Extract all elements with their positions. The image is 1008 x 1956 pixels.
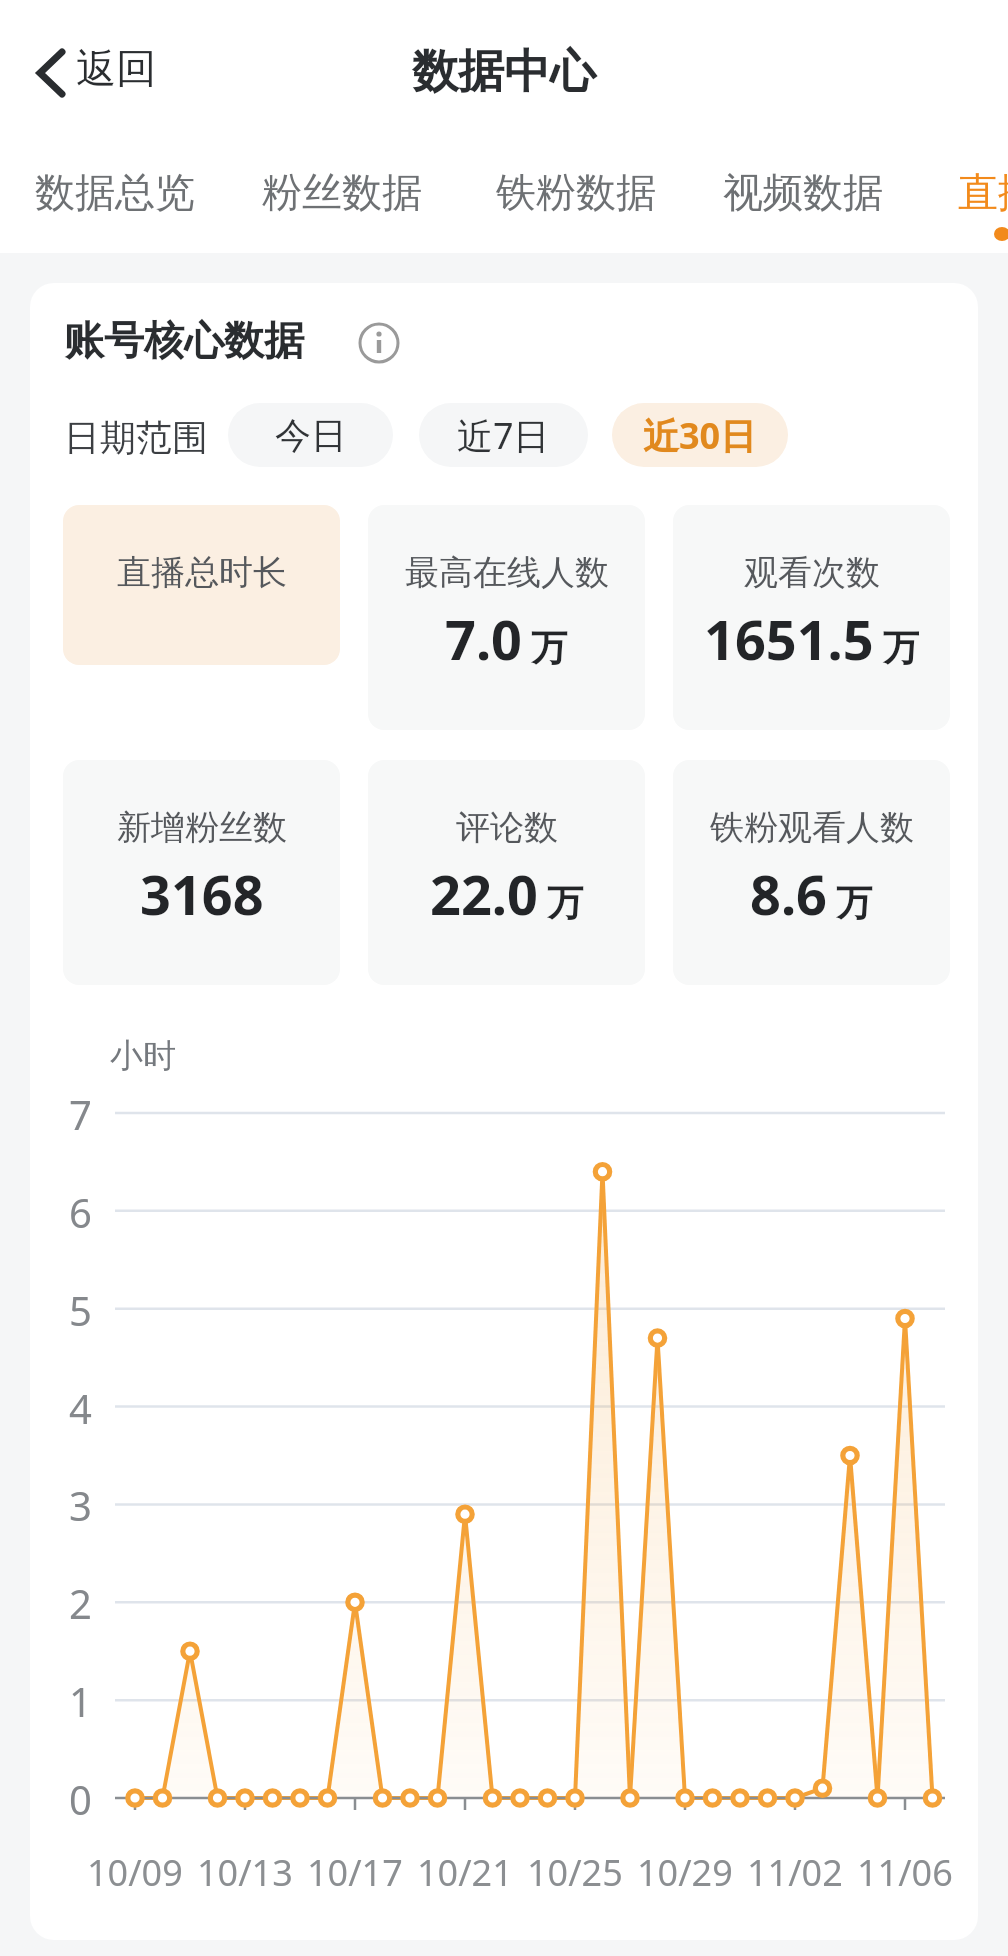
staticText: 10/29 (637, 1848, 733, 1897)
staticText: 11/02 (747, 1848, 843, 1897)
staticText: 数据总览 (35, 167, 195, 217)
staticText: 粉丝数据 (262, 167, 422, 217)
staticText: 1651.5 万 (704, 602, 919, 676)
staticText: 近30日 (643, 411, 757, 460)
button[interactable]: 评论数 (368, 760, 645, 985)
button[interactable]: 观看次数 (673, 505, 950, 730)
staticText: 7 (69, 1087, 92, 1139)
button[interactable] (419, 403, 588, 467)
staticText: 铁粉数据 (496, 167, 656, 217)
staticText: 直播总时长 (117, 551, 287, 594)
staticText: 11/06 (857, 1848, 953, 1897)
staticText: 直播数据 (958, 167, 1008, 217)
staticText: 视频数据 (723, 167, 883, 217)
button[interactable] (357, 321, 401, 365)
button[interactable]: 铁粉观看人数 (673, 760, 950, 985)
staticText: 10/17 (307, 1848, 403, 1897)
button[interactable]: 直播总时长 (63, 505, 340, 665)
staticText: 7.0 万 (445, 602, 568, 676)
staticText: 0 (69, 1772, 92, 1824)
staticText: 观看次数 (744, 551, 880, 594)
staticText: 3 (69, 1478, 92, 1530)
staticText: 6 (69, 1185, 92, 1237)
staticText: 日期范围 (64, 415, 208, 460)
staticText: 数据中心 (412, 43, 596, 101)
button[interactable]: 铁粉数据 (496, 155, 656, 205)
staticText: 22.0 万 (430, 857, 584, 931)
staticText: 1 (69, 1674, 92, 1726)
staticText: 10/13 (197, 1848, 293, 1897)
staticText: 10/21 (417, 1848, 513, 1897)
button[interactable]: 直播数据 (958, 155, 1008, 205)
button[interactable]: 视频数据 (723, 155, 883, 205)
button[interactable] (612, 403, 788, 467)
staticText: 小时 (110, 1035, 176, 1077)
staticText: 2 (69, 1576, 92, 1628)
staticText: 8.6 万 (750, 857, 873, 931)
staticText: 账号核心数据 (64, 315, 304, 365)
staticText: 10/25 (527, 1848, 623, 1897)
button[interactable]: 返回 (30, 40, 210, 106)
staticText: 10/09 (87, 1848, 183, 1897)
staticText: 3168 (140, 857, 264, 931)
staticText: 最高在线人数 (405, 551, 609, 594)
staticText: 评论数 (456, 806, 558, 849)
staticText: 近7日 (457, 411, 550, 460)
staticText: 4 (69, 1381, 92, 1433)
button[interactable] (228, 403, 393, 467)
button[interactable]: 数据总览 (35, 155, 195, 205)
button[interactable]: 新增粉丝数 (63, 760, 340, 985)
staticText: 铁粉观看人数 (710, 806, 914, 849)
staticText: 返回 (76, 43, 156, 93)
button[interactable]: 最高在线人数 (368, 505, 645, 730)
staticText: 5 (69, 1283, 92, 1335)
button[interactable]: 粉丝数据 (262, 155, 422, 205)
staticText: 今日 (275, 413, 347, 458)
staticText: 新增粉丝数 (117, 806, 287, 849)
